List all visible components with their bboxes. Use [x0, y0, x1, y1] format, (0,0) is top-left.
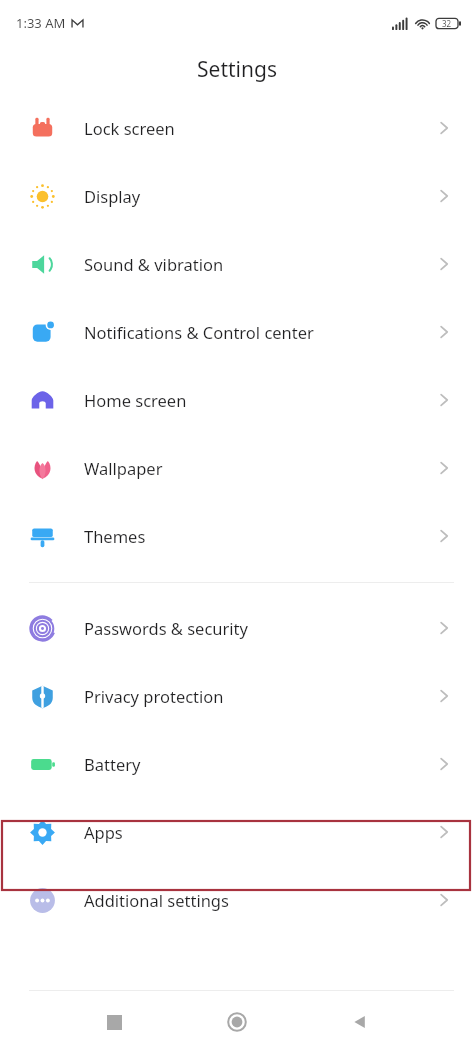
button[interactable]: Home screen — [0, 366, 474, 434]
button[interactable]: Display — [0, 162, 474, 230]
button[interactable]: Apps — [0, 798, 474, 866]
staticText: Display — [84, 185, 141, 207]
button[interactable]: Back — [339, 1001, 381, 1043]
staticText: Passwords & security — [84, 617, 248, 639]
staticText: Battery — [84, 753, 141, 775]
staticText: Privacy protection — [84, 685, 224, 707]
staticText: Lock screen — [84, 117, 175, 139]
button[interactable]: Recent apps — [93, 1001, 135, 1043]
button[interactable]: Home — [216, 1001, 258, 1043]
staticText: Wallpaper — [84, 457, 163, 479]
button[interactable]: Notifications & Control center — [0, 298, 474, 366]
button[interactable]: Lock screen — [0, 94, 474, 162]
button[interactable]: Themes — [0, 502, 474, 570]
staticText: Apps — [84, 821, 123, 843]
staticText: Sound & vibration — [84, 253, 224, 275]
staticText: 1:33 AM — [16, 14, 66, 32]
button[interactable]: Battery — [0, 730, 474, 798]
button[interactable]: Sound & vibration — [0, 230, 474, 298]
staticText: Home screen — [84, 389, 187, 411]
staticText: 32 — [442, 18, 452, 29]
staticText: Additional settings — [84, 889, 229, 911]
staticText: Settings — [197, 55, 277, 84]
button[interactable]: Privacy protection — [0, 662, 474, 730]
button[interactable]: Wallpaper — [0, 434, 474, 502]
staticText: Notifications & Control center — [84, 321, 314, 343]
button[interactable]: Additional settings — [0, 866, 474, 934]
button[interactable]: Passwords & security — [0, 594, 474, 662]
staticText: Themes — [84, 525, 146, 547]
